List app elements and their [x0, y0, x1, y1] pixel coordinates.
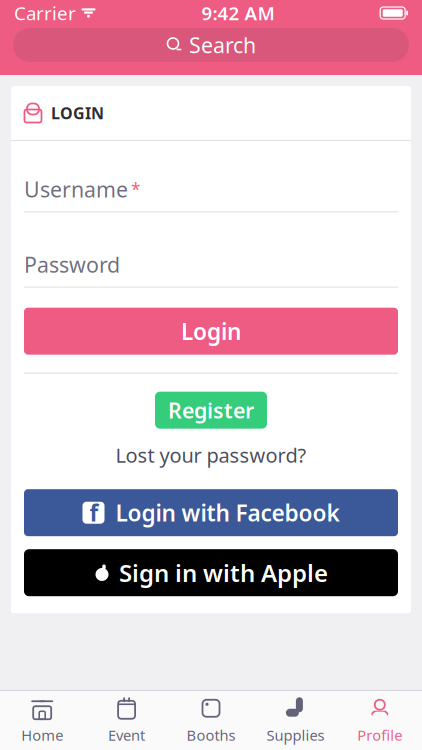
staticText: 9:42 AM [202, 1, 275, 25]
staticText: Supplies [266, 725, 324, 745]
staticText: Event [108, 725, 145, 745]
button[interactable]: Event [84, 691, 169, 750]
staticText: Username [24, 175, 128, 203]
staticText: Lost your password? [115, 442, 306, 468]
button[interactable]: Booths [169, 691, 253, 750]
staticText: Carrier [14, 1, 76, 25]
staticText: * [131, 178, 141, 201]
staticText: Login [181, 316, 241, 346]
staticText: Register [168, 396, 254, 424]
staticText: Home [21, 725, 63, 745]
button[interactable]: Register [155, 392, 267, 429]
button[interactable]: Search [13, 28, 409, 62]
button[interactable]: f [24, 489, 398, 536]
button[interactable]: Lost your password? [115, 442, 306, 468]
staticText: Sign in with Apple [119, 557, 328, 589]
staticText: f [89, 498, 98, 528]
staticText: Search [189, 31, 256, 59]
staticText: Password [24, 250, 120, 279]
button[interactable]: Login [24, 308, 398, 355]
staticText: Booths [186, 725, 235, 745]
button[interactable]: Home [0, 691, 84, 750]
staticText: LOGIN [51, 102, 104, 124]
button[interactable]: Sign in with Apple [24, 549, 398, 596]
button[interactable]: Supplies [253, 691, 338, 750]
staticText: Login with Facebook [115, 498, 339, 528]
staticText: Profile [357, 725, 402, 745]
button[interactable]: Profile [338, 691, 422, 750]
